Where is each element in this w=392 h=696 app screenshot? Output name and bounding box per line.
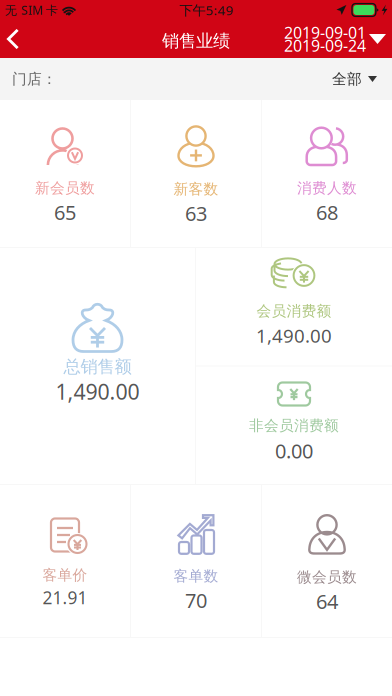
button[interactable]: 消费人数 xyxy=(262,100,392,247)
staticText: 销售业绩 xyxy=(162,30,230,52)
staticText: 70 xyxy=(185,587,207,614)
button[interactable]: 客单数 xyxy=(131,485,261,637)
button[interactable]: 客单价 xyxy=(0,485,130,637)
staticText: 下午5:49 xyxy=(179,1,233,19)
staticText: 0.00 xyxy=(275,437,313,464)
button[interactable]: 微会员数 xyxy=(262,485,392,637)
button[interactable]: 2019-09-01 xyxy=(284,22,392,56)
button[interactable]: 新客数 xyxy=(131,100,261,247)
staticText: 63 xyxy=(185,200,207,227)
button[interactable]: 会员消费额 xyxy=(196,248,392,365)
button[interactable]: 总销售额 xyxy=(0,248,195,484)
staticText: 2019-09-24 xyxy=(284,35,366,56)
staticText: 总销售额 xyxy=(63,356,131,377)
button[interactable]: 全部 xyxy=(332,62,377,96)
staticText: 客单价 xyxy=(42,566,87,584)
staticText: 门店： xyxy=(12,70,57,88)
staticText: 会员消费额 xyxy=(256,302,331,320)
staticText: 68 xyxy=(316,199,338,226)
staticText: 65 xyxy=(54,199,76,226)
staticText: 非会员消费额 xyxy=(249,416,339,434)
button[interactable]: 非会员消费额 xyxy=(196,366,392,484)
staticText: 无 SIM 卡 xyxy=(5,2,58,18)
staticText: 64 xyxy=(316,588,338,615)
staticText: 客单数 xyxy=(173,567,218,585)
staticText: 1,490.00 xyxy=(256,323,332,348)
staticText: 新客数 xyxy=(173,180,218,198)
button[interactable]: 新会员数 xyxy=(0,100,130,247)
staticText: 21.91 xyxy=(42,586,87,609)
staticText: 微会员数 xyxy=(297,568,357,586)
button[interactable]: 返回 xyxy=(0,21,33,57)
staticText: 2019-09-01 xyxy=(284,22,366,43)
staticText: 全部 xyxy=(332,70,362,88)
staticText: 新会员数 xyxy=(35,179,95,197)
staticText: 1,490.00 xyxy=(55,377,139,406)
staticText: 消费人数 xyxy=(297,179,357,197)
